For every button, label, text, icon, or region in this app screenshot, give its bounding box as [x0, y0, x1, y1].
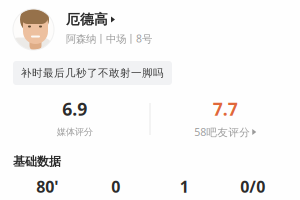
- staticText: 0/0: [240, 176, 265, 197]
- staticText: 58吧友评分: [194, 125, 250, 139]
- staticText: 补时最后几秒了不敢射一脚吗: [21, 66, 164, 80]
- staticText: 基础数据: [13, 154, 61, 169]
- staticText: 媒体评分: [57, 126, 93, 138]
- staticText: 阿森纳丨中场丨8号: [66, 31, 152, 46]
- staticText: 厄德高: [66, 11, 108, 28]
- button[interactable]: 厄德高: [13, 9, 300, 50]
- staticText: 1: [180, 176, 189, 197]
- button[interactable]: 7.7: [150, 101, 300, 137]
- staticText: 80': [36, 176, 58, 197]
- staticText: 7.7: [213, 97, 238, 121]
- staticText: 0: [111, 176, 120, 197]
- staticText: 6.9: [62, 97, 87, 121]
